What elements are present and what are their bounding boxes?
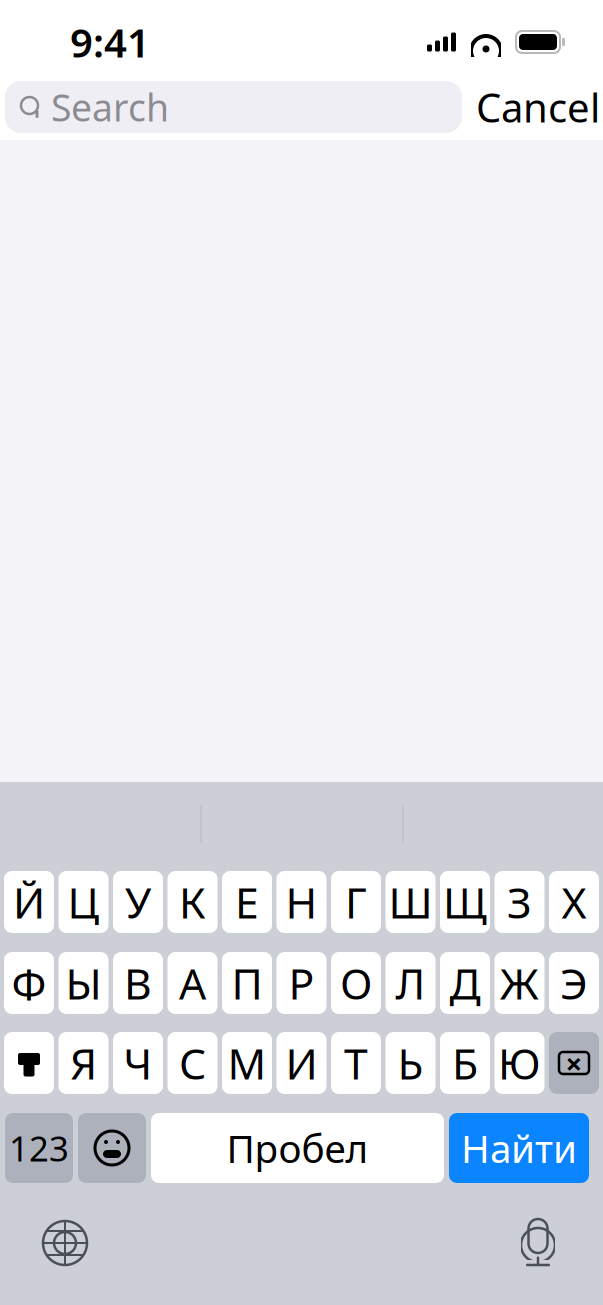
button[interactable]: Dictation <box>503 1208 573 1278</box>
staticText: Пробел <box>226 1122 368 1174</box>
button[interactable]: Э <box>549 952 599 1014</box>
staticText: Э <box>560 955 588 1011</box>
staticText: К <box>179 874 206 930</box>
staticText: Х <box>561 874 586 930</box>
staticText: Л <box>395 955 425 1011</box>
button[interactable]: Д <box>440 952 490 1014</box>
button[interactable]: Delete <box>549 1032 599 1094</box>
staticText: Щ <box>443 874 487 930</box>
staticText: Н <box>285 874 317 930</box>
button[interactable]: П <box>222 952 272 1014</box>
button[interactable]: Cancel <box>470 72 603 141</box>
button[interactable]: А <box>167 952 217 1014</box>
button[interactable]: Л <box>385 952 435 1014</box>
button[interactable]: Г <box>331 871 381 933</box>
button[interactable]: Й <box>4 871 54 933</box>
button[interactable]: З <box>494 871 544 933</box>
staticText: А <box>179 955 206 1011</box>
button[interactable]: Р <box>276 952 326 1014</box>
staticText: Найти <box>461 1122 577 1174</box>
button[interactable]: Т <box>331 1032 381 1094</box>
staticText: Ж <box>500 955 539 1011</box>
staticText: Т <box>344 1035 368 1091</box>
staticText: Я <box>70 1035 97 1091</box>
staticText: Search <box>51 82 169 132</box>
button[interactable]: Ш <box>385 871 435 933</box>
staticText: Ю <box>498 1035 541 1091</box>
staticText: Ы <box>65 955 101 1011</box>
button[interactable]: Ж <box>494 952 544 1014</box>
staticText: М <box>227 1035 266 1091</box>
staticText: П <box>231 955 262 1011</box>
staticText: 9:41 <box>70 15 150 68</box>
button[interactable]: Е <box>222 871 272 933</box>
button[interactable]: Б <box>440 1032 490 1094</box>
staticText: Е <box>235 874 259 930</box>
staticText: Ь <box>397 1035 423 1091</box>
staticText: 123 <box>9 1125 69 1171</box>
button[interactable]: Ф <box>4 952 54 1014</box>
staticText: У <box>125 874 151 930</box>
staticText: С <box>179 1035 206 1091</box>
button[interactable]: О <box>331 952 381 1014</box>
button[interactable]: Н <box>276 871 326 933</box>
staticText: Г <box>345 874 367 930</box>
button[interactable]: И <box>276 1032 326 1094</box>
button[interactable]: Х <box>549 871 599 933</box>
staticText: Ч <box>123 1035 152 1091</box>
button[interactable]: Ы <box>58 952 108 1014</box>
button[interactable]: Ь <box>385 1032 435 1094</box>
staticText: И <box>285 1035 317 1091</box>
staticText: О <box>340 955 372 1011</box>
button[interactable]: М <box>222 1032 272 1094</box>
button[interactable]: Emoji <box>78 1113 146 1183</box>
staticText: В <box>124 955 152 1011</box>
button[interactable]: Щ <box>440 871 490 933</box>
button[interactable]: Найти <box>449 1113 589 1183</box>
staticText: Ф <box>11 955 46 1011</box>
button[interactable]: Ц <box>58 871 108 933</box>
staticText: Cancel <box>476 80 600 133</box>
staticText: Д <box>449 955 480 1011</box>
button[interactable]: 123 <box>5 1113 73 1183</box>
button[interactable]: С <box>167 1032 217 1094</box>
button[interactable]: Search <box>5 81 462 133</box>
staticText: Ш <box>388 874 432 930</box>
staticText: Ц <box>67 874 99 930</box>
staticText: × <box>565 1043 582 1082</box>
button[interactable]: У <box>113 871 163 933</box>
staticText: Й <box>13 874 45 930</box>
button[interactable]: Change keyboard <box>30 1208 100 1278</box>
button[interactable]: Shift <box>4 1032 54 1094</box>
staticText: З <box>507 874 532 930</box>
button[interactable]: К <box>167 871 217 933</box>
staticText: Б <box>452 1035 478 1091</box>
button[interactable]: В <box>113 952 163 1014</box>
button[interactable]: Я <box>58 1032 108 1094</box>
staticText: Р <box>288 955 314 1011</box>
button[interactable]: Пробел <box>151 1113 444 1183</box>
button[interactable]: Ч <box>113 1032 163 1094</box>
button[interactable]: Ю <box>494 1032 544 1094</box>
